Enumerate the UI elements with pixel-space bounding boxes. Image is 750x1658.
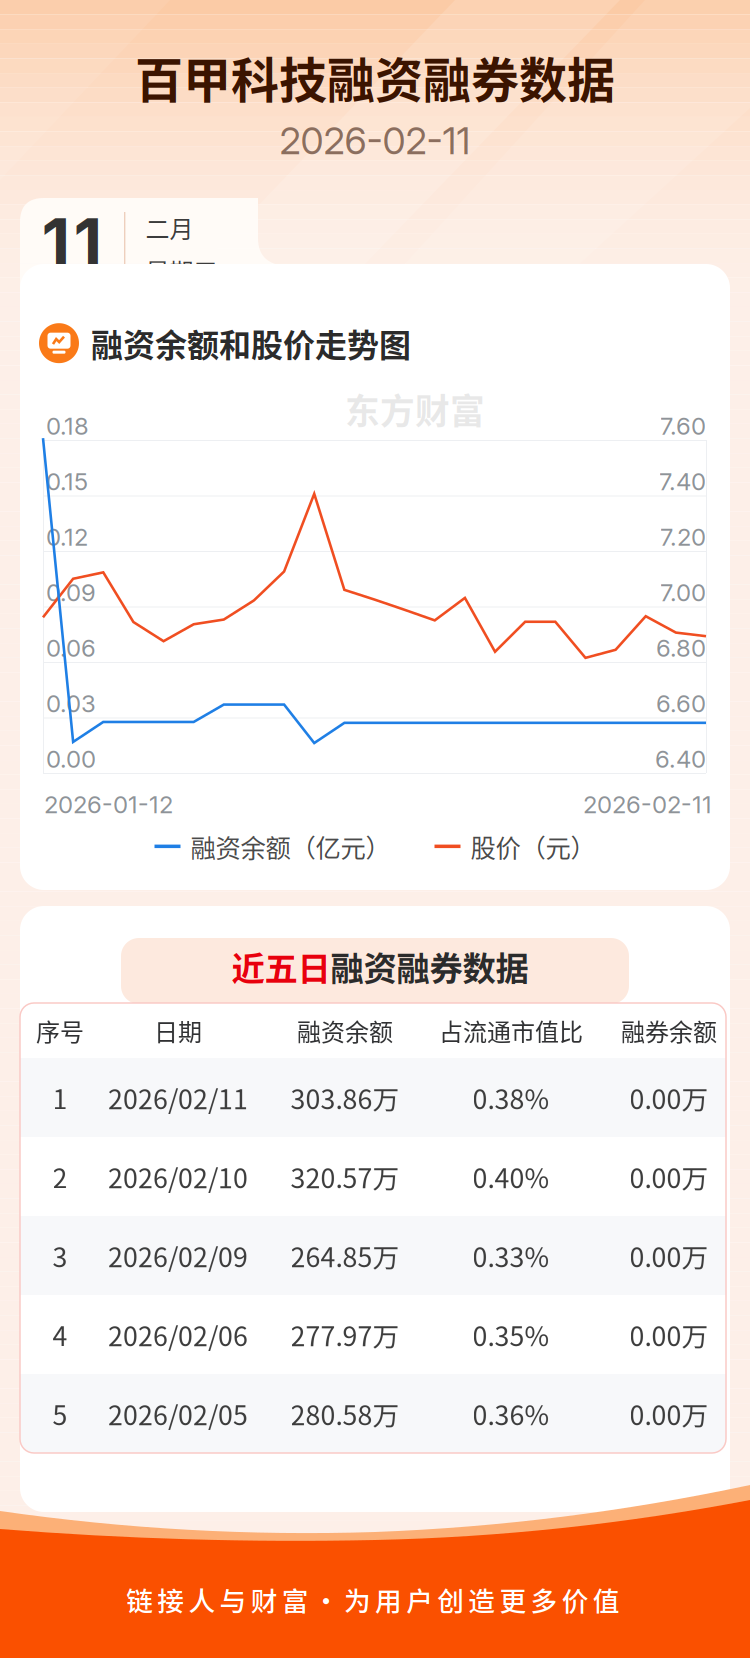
staticText: 2026-01-12 (44, 790, 173, 819)
staticText: 7.60 (660, 411, 706, 440)
staticText: 0.00万 (629, 1394, 708, 1433)
staticText: 0.35% (472, 1315, 549, 1354)
staticText: 6.80 (656, 633, 706, 662)
staticText: 股价（元） (470, 828, 595, 865)
staticText: 4 (52, 1315, 67, 1354)
staticText: 序号 (36, 1013, 84, 1048)
staticText: 277.97万 (290, 1315, 399, 1354)
staticText: 5 (52, 1394, 67, 1433)
staticText: 0.40% (472, 1157, 549, 1196)
staticText: 2026/02/06 (108, 1315, 248, 1354)
staticText: 百甲科技融资融券数据 (135, 42, 615, 111)
staticText: 2026/02/05 (108, 1394, 248, 1433)
staticText: 280.58万 (290, 1394, 399, 1433)
staticText: 2026-02-11 (583, 790, 712, 819)
staticText: 0.03 (46, 689, 96, 718)
staticText: 2026/02/11 (108, 1078, 248, 1117)
staticText: 占流通市值比 (439, 1013, 583, 1048)
staticText: 0.38% (472, 1078, 549, 1117)
staticText: 0.00万 (629, 1078, 708, 1117)
staticText: 7.20 (660, 522, 706, 551)
staticText: 2026-02-11 (279, 118, 470, 163)
staticText: 7.40 (659, 467, 706, 496)
staticText: 2026/02/10 (108, 1157, 248, 1196)
staticText: 2026/02/09 (108, 1236, 248, 1275)
staticText: 0.09 (46, 578, 96, 607)
staticText: 6.40 (655, 744, 706, 773)
staticText: 0.12 (46, 522, 88, 551)
staticText: 0.00万 (629, 1315, 708, 1354)
staticText: 0.18 (46, 411, 89, 440)
staticText: 0.15 (46, 467, 88, 496)
staticText: 融资融券数据 (330, 942, 528, 990)
staticText: 0.00万 (629, 1236, 708, 1275)
staticText: 264.85万 (290, 1236, 399, 1275)
staticText: 6.60 (656, 689, 706, 718)
staticText: 303.86万 (290, 1078, 399, 1117)
staticText: 日期 (154, 1013, 202, 1048)
staticText: 3 (52, 1236, 67, 1275)
staticText: 11 (41, 203, 102, 283)
staticText: 星期三 (145, 253, 217, 288)
staticText: 1 (52, 1078, 67, 1117)
staticText: 融券余额 (621, 1013, 717, 1048)
staticText: 融资余额 (297, 1013, 393, 1048)
staticText: 链接人与财富·为用户创造更多价值 (126, 1580, 620, 1619)
staticText: 7.00 (660, 578, 706, 607)
staticText: 0.00万 (629, 1157, 708, 1196)
staticText: 0.33% (472, 1236, 549, 1275)
staticText: 融资余额（亿元） (190, 828, 390, 865)
staticText: 0.36% (472, 1394, 549, 1433)
staticText: 二月 (145, 210, 193, 245)
staticText: 320.57万 (290, 1157, 399, 1196)
staticText: 东方财富 (345, 384, 485, 434)
staticText: 0.06 (46, 633, 96, 662)
staticText: 近五日 (231, 942, 330, 990)
staticText: 2 (52, 1157, 67, 1196)
staticText: 0.00 (46, 744, 96, 773)
staticText: 融资余额和股价走势图 (91, 320, 411, 366)
